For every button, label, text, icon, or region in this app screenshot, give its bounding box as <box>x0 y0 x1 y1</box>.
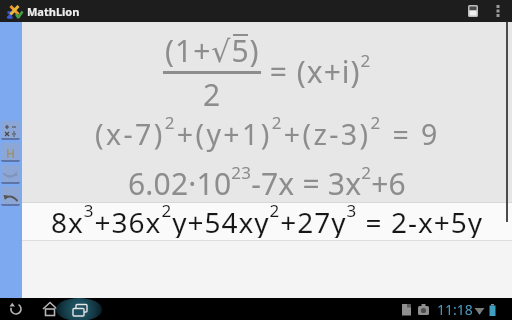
button[interactable] <box>1 165 20 184</box>
button[interactable] <box>1 121 20 140</box>
staticText: = (x+i)2 <box>261 49 372 91</box>
staticText: MathLion <box>27 4 80 19</box>
staticText: 11:18 <box>437 300 473 319</box>
button[interactable]: H <box>1 143 20 162</box>
button[interactable]: 8x3+36x2y+54xy2+27y3 = 2-x+5y <box>22 202 512 241</box>
button[interactable] <box>1 187 20 206</box>
staticText: 6.02·1023-7x = 3x2+6 <box>128 161 406 203</box>
button[interactable] <box>42 301 58 317</box>
button[interactable] <box>56 298 102 320</box>
staticText: (1+√5) <box>165 30 260 71</box>
staticText: 8x3+36x2y+54xy2+27y3 = 2-x+5y <box>51 199 484 238</box>
staticText: (x-7)2+(y+1)2+(z-3)2 = 9 <box>95 111 440 153</box>
staticText: H <box>6 145 15 161</box>
button[interactable] <box>468 5 478 17</box>
button[interactable] <box>8 301 24 317</box>
button[interactable] <box>496 4 500 18</box>
button[interactable]: MathLion <box>7 4 80 19</box>
staticText: 2 <box>203 74 221 115</box>
